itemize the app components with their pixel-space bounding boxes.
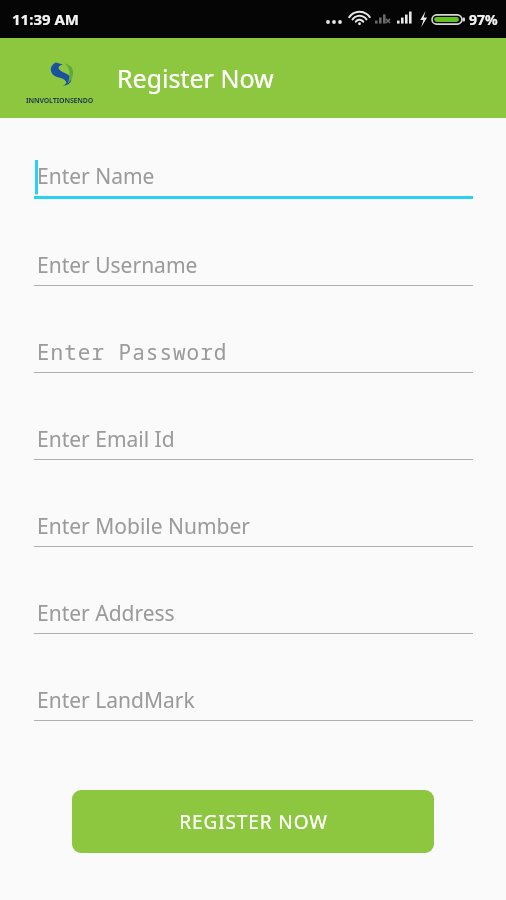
staticText: 97% — [469, 10, 498, 29]
button[interactable]: Enter Username — [34, 245, 473, 286]
button[interactable]: Enter Email Id — [34, 419, 473, 460]
staticText: Register Now — [117, 61, 274, 95]
staticText: Enter Password — [37, 338, 228, 367]
button[interactable]: App logo — [14, 50, 106, 106]
button[interactable]: Enter Mobile Number — [34, 506, 473, 547]
button[interactable]: REGISTER NOW — [72, 790, 434, 853]
staticText: REGISTER NOW — [179, 809, 328, 835]
staticText: Enter Mobile Number — [37, 512, 251, 541]
staticText: Enter Email Id — [37, 425, 175, 454]
staticText: Enter LandMark — [37, 686, 195, 715]
staticText: 11:39 AM — [12, 9, 79, 29]
staticText: Enter Username — [37, 251, 198, 280]
button[interactable]: Enter Name — [34, 156, 473, 199]
staticText: Enter Address — [37, 599, 175, 628]
staticText: INNVOLTIONSENDO — [26, 96, 94, 106]
button[interactable]: Enter LandMark — [34, 680, 473, 721]
staticText: Enter Name — [37, 162, 155, 191]
button[interactable]: Enter Password — [34, 332, 473, 373]
button[interactable]: Enter Address — [34, 593, 473, 634]
